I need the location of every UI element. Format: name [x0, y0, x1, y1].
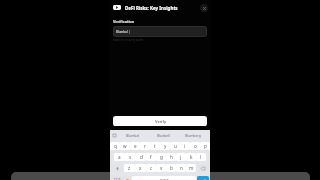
staticText: h	[170, 154, 173, 160]
other: Shift	[116, 167, 119, 170]
button[interactable]: Shift	[111, 164, 123, 172]
button[interactable]: Blumbal	[113, 26, 207, 37]
staticText: q	[114, 143, 117, 149]
button[interactable]: h	[166, 153, 176, 161]
other: Backspace	[201, 167, 205, 170]
staticText: c	[150, 165, 153, 171]
staticText: t	[154, 143, 156, 149]
button[interactable]: w	[120, 142, 130, 150]
staticText: a	[118, 154, 121, 160]
staticText: s	[129, 154, 132, 160]
staticText: i	[184, 143, 186, 149]
button[interactable]: g	[156, 153, 166, 161]
button[interactable]: z	[124, 164, 135, 172]
button[interactable]: v	[156, 164, 166, 172]
staticText: z	[128, 165, 131, 171]
button[interactable]: s	[125, 153, 136, 161]
staticText: r	[144, 143, 146, 149]
staticText: n	[180, 165, 183, 171]
button[interactable]: Verify	[113, 116, 207, 126]
staticText: Blumbal	[116, 30, 128, 34]
button[interactable]: t	[150, 142, 160, 150]
staticText: k	[190, 154, 193, 160]
staticText: f	[150, 154, 152, 160]
button[interactable]: c	[146, 164, 156, 172]
button[interactable]: x	[135, 164, 146, 172]
staticText: Verify	[155, 119, 166, 124]
button[interactable]: k	[186, 153, 196, 161]
button[interactable]: Emoji	[124, 176, 131, 180]
button[interactable]: d	[136, 153, 146, 161]
staticText: Switch to recovery words	[113, 38, 144, 42]
staticText: l	[200, 154, 202, 160]
button[interactable]: Enter	[197, 176, 209, 180]
staticText: g	[160, 154, 163, 160]
staticText: b	[170, 165, 173, 171]
staticText: DeFi Risks: Key Insights	[125, 5, 178, 11]
button[interactable]: space	[132, 176, 196, 180]
button[interactable]: y	[160, 142, 170, 150]
staticText: m	[189, 165, 194, 171]
button[interactable]: Close	[200, 4, 208, 12]
button[interactable]: l	[196, 153, 206, 161]
button[interactable]: ?123	[111, 176, 123, 180]
button[interactable]: n	[176, 164, 186, 172]
staticText: space	[160, 178, 169, 180]
button[interactable]: j	[176, 153, 186, 161]
button[interactable]: i	[180, 142, 190, 150]
staticText: p	[204, 143, 207, 149]
staticText: u	[174, 143, 177, 149]
staticText: Blumberg	[185, 133, 201, 138]
staticText: j	[180, 154, 182, 160]
button[interactable]: b	[166, 164, 176, 172]
button[interactable]: e	[130, 142, 140, 150]
button[interactable]: Backspace	[197, 164, 209, 172]
button[interactable]: p	[200, 142, 210, 150]
button[interactable]: r	[140, 142, 150, 150]
button[interactable]: a	[114, 153, 125, 161]
staticText: ?123	[114, 178, 121, 180]
button[interactable]: m	[186, 164, 196, 172]
button[interactable]: o	[190, 142, 200, 150]
staticText: Blumbal	[126, 133, 140, 138]
button[interactable]: u	[170, 142, 180, 150]
staticText: x	[139, 165, 142, 171]
staticText: e	[134, 143, 137, 149]
staticText: Bluebell	[157, 133, 170, 138]
staticText: d	[140, 154, 143, 160]
button[interactable]: f	[146, 153, 156, 161]
staticText: v	[160, 165, 163, 171]
staticText: w	[123, 143, 127, 149]
button[interactable]: q	[110, 142, 120, 150]
staticText: Verification	[113, 19, 135, 24]
staticText: o	[194, 143, 197, 149]
staticText: y	[164, 143, 167, 149]
